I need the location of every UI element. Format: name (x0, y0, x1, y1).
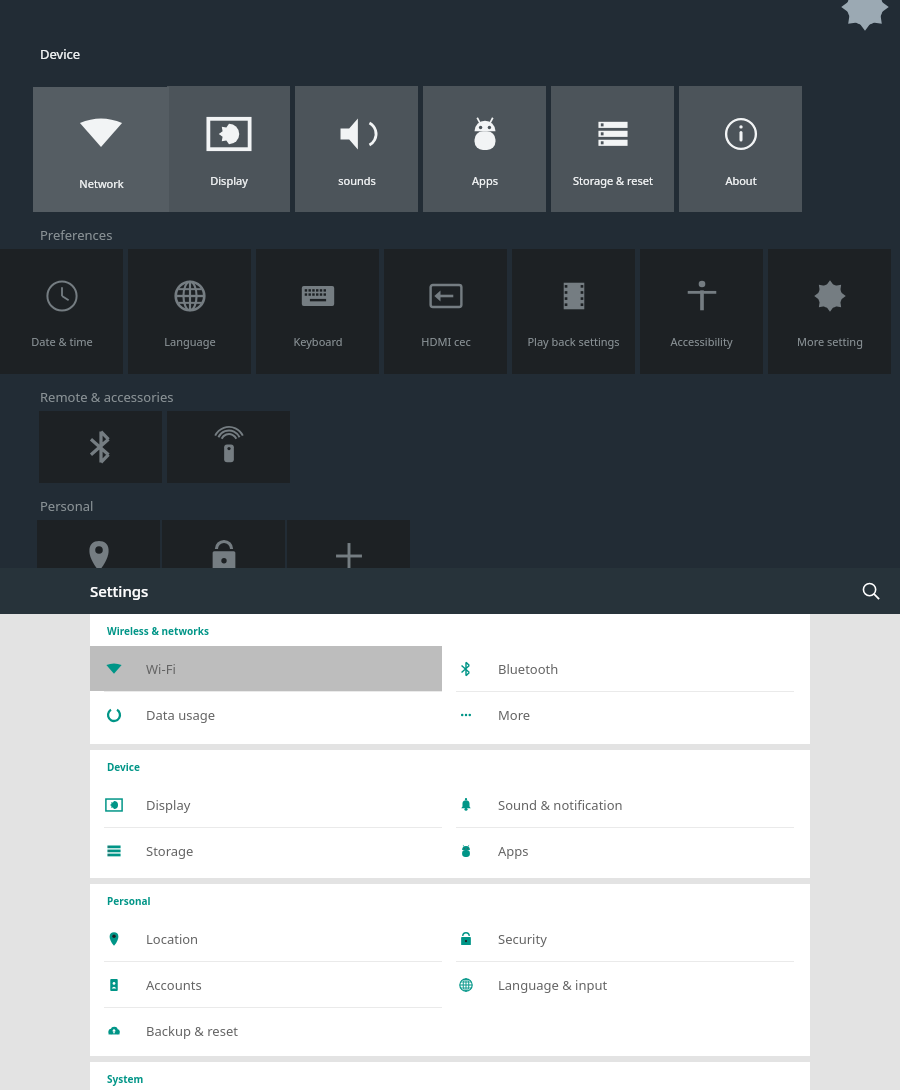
staticText: More setting (797, 334, 863, 349)
button[interactable]: sounds (295, 86, 418, 212)
staticText: Display (210, 173, 248, 188)
staticText: Play back settings (527, 334, 620, 349)
staticText: Personal (107, 894, 151, 908)
staticText: Location (146, 930, 199, 948)
button[interactable]: Network (33, 87, 169, 212)
button[interactable]: tile (39, 411, 162, 483)
staticText: Preferences (40, 226, 113, 244)
button[interactable]: Accounts (90, 962, 442, 1007)
staticText: Data usage (146, 706, 216, 724)
button[interactable]: Play back settings (512, 249, 635, 374)
button[interactable]: Language & input (442, 962, 794, 1007)
staticText: About (725, 173, 757, 188)
button[interactable]: Sound & notification (442, 782, 794, 827)
button[interactable]: About (679, 86, 802, 212)
staticText: Accounts (146, 976, 202, 994)
staticText: More (498, 706, 531, 724)
staticText: Storage (146, 842, 194, 860)
staticText: Device (40, 45, 81, 63)
staticText: Settings (90, 581, 149, 601)
button[interactable]: Apps (442, 828, 794, 873)
button[interactable]: Accessibility (640, 249, 763, 374)
button[interactable]: Storage & reset (551, 86, 674, 212)
button[interactable]: Apps (423, 86, 546, 212)
staticText: Device (107, 760, 140, 774)
button[interactable]: Display (167, 86, 290, 212)
button[interactable]: Settings (0, 568, 900, 614)
staticText: Backup & reset (146, 1022, 238, 1040)
button[interactable]: Backup & reset (90, 1008, 442, 1053)
button[interactable]: Data usage (90, 692, 442, 737)
staticText: sounds (338, 173, 376, 188)
button[interactable]: Keyboard (256, 249, 379, 374)
staticText: Security (498, 930, 547, 948)
button[interactable]: Security (442, 916, 794, 961)
staticText: Wi-Fi (146, 660, 176, 678)
button[interactable]: tile (37, 520, 160, 592)
staticText: Accessibility (670, 334, 733, 349)
staticText: Personal (40, 497, 94, 515)
button[interactable]: Storage (90, 828, 442, 873)
staticText: Storage & reset (573, 173, 653, 188)
button[interactable]: More (442, 692, 794, 737)
button[interactable]: Bluetooth (442, 646, 794, 691)
button[interactable]: Wi-Fi (90, 646, 442, 691)
button[interactable]: Date & time (0, 249, 123, 374)
staticText: Remote & accessories (40, 388, 174, 406)
button[interactable]: tile (162, 520, 285, 592)
button[interactable]: Search (850, 570, 892, 612)
staticText: Network (79, 176, 124, 191)
staticText: Language (164, 334, 216, 349)
button[interactable]: HDMI cec (384, 249, 507, 374)
button[interactable]: More setting (768, 249, 891, 374)
button[interactable]: Display (90, 782, 442, 827)
staticText: Sound & notification (498, 796, 623, 814)
staticText: Display (146, 796, 191, 814)
staticText: HDMI cec (421, 334, 471, 349)
staticText: Apps (498, 842, 529, 860)
button[interactable]: tile (167, 411, 290, 483)
button[interactable]: tile (287, 520, 410, 592)
staticText: Date & time (31, 334, 93, 349)
button[interactable]: Language (128, 249, 251, 374)
staticText: Language & input (498, 976, 608, 994)
staticText: Wireless & networks (107, 624, 209, 638)
staticText: Bluetooth (498, 660, 559, 678)
staticText: System (107, 1072, 144, 1086)
staticText: Apps (472, 173, 498, 188)
button[interactable]: Location (90, 916, 442, 961)
staticText: Keyboard (293, 334, 343, 349)
